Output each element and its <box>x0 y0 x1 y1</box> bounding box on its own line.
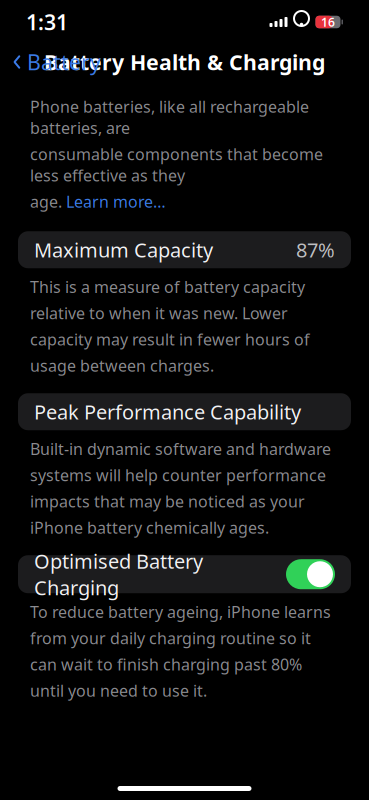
staticText: 16 <box>321 14 335 30</box>
staticText: Maximum Capacity <box>34 236 213 263</box>
staticText: Built-in dynamic software and hardware s… <box>30 438 331 538</box>
button[interactable]: Optimised Battery Charging <box>18 555 351 593</box>
staticText: Learn more… <box>66 191 166 212</box>
staticText: 1:31 <box>26 8 68 36</box>
staticText: Phone batteries, like all rechargeable b… <box>30 96 309 138</box>
staticText: To reduce battery ageing, iPhone learns … <box>30 601 331 701</box>
staticText: Peak Performance Capability <box>34 398 301 425</box>
staticText: 87% <box>296 236 335 263</box>
staticText: age. <box>30 191 62 212</box>
button[interactable]: Battery <box>0 42 113 82</box>
button[interactable]: Optimised Battery Charging <box>286 559 335 589</box>
button[interactable]: Learn more… <box>66 191 166 212</box>
staticText: Battery <box>27 48 101 76</box>
staticText: This is a measure of battery capacity re… <box>30 276 310 376</box>
button[interactable]: Peak Performance Capability <box>18 393 351 430</box>
staticText: Battery Health & Charging <box>44 48 325 76</box>
staticText: Optimised Battery Charging <box>34 548 203 601</box>
staticText: consumable components that become less e… <box>30 143 323 186</box>
button[interactable]: Maximum Capacity <box>18 231 351 268</box>
